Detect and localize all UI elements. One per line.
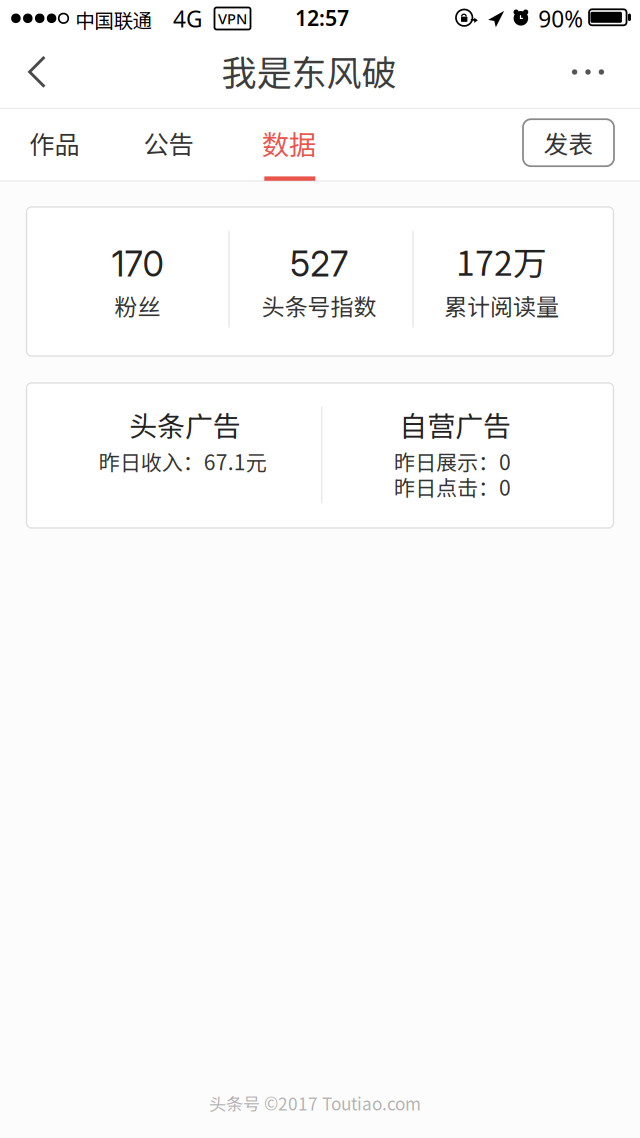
staticText: 4G [173,4,203,34]
button[interactable]: 作品 [0,109,112,182]
staticText: 170 [111,243,163,285]
staticText: 作品 [29,125,79,161]
button[interactable]: Back [0,38,75,105]
staticText: 头条广告 [129,404,241,445]
staticText: 自营广告 [399,404,511,445]
staticText: 头条号 ©2017 Toutiao.com [209,1090,421,1115]
staticText: 发表 [543,125,593,161]
staticText: 527 [290,243,348,285]
staticText: 中国联通 [75,5,151,34]
staticText: 昨日展示：0 [394,446,511,476]
staticText: 数据 [262,123,316,163]
button[interactable]: More [545,38,631,105]
staticText: 昨日点击：0 [394,471,511,502]
staticText: 172万 [456,237,547,285]
staticText: 公告 [143,125,193,161]
button[interactable]: 公告 [110,109,226,182]
staticText: 12:57 [295,3,349,32]
staticText: VPN [218,9,247,28]
staticText: 我是东风破 [221,45,396,96]
button[interactable]: 发表 [523,119,614,166]
staticText: 头条号指数 [261,289,376,322]
button[interactable]: 数据 [231,109,347,182]
staticText: 累计阅读量 [444,289,559,322]
staticText: 粉丝 [114,289,160,322]
staticText: 90% [538,4,583,34]
staticText: 昨日收入：67.1元 [99,446,267,476]
